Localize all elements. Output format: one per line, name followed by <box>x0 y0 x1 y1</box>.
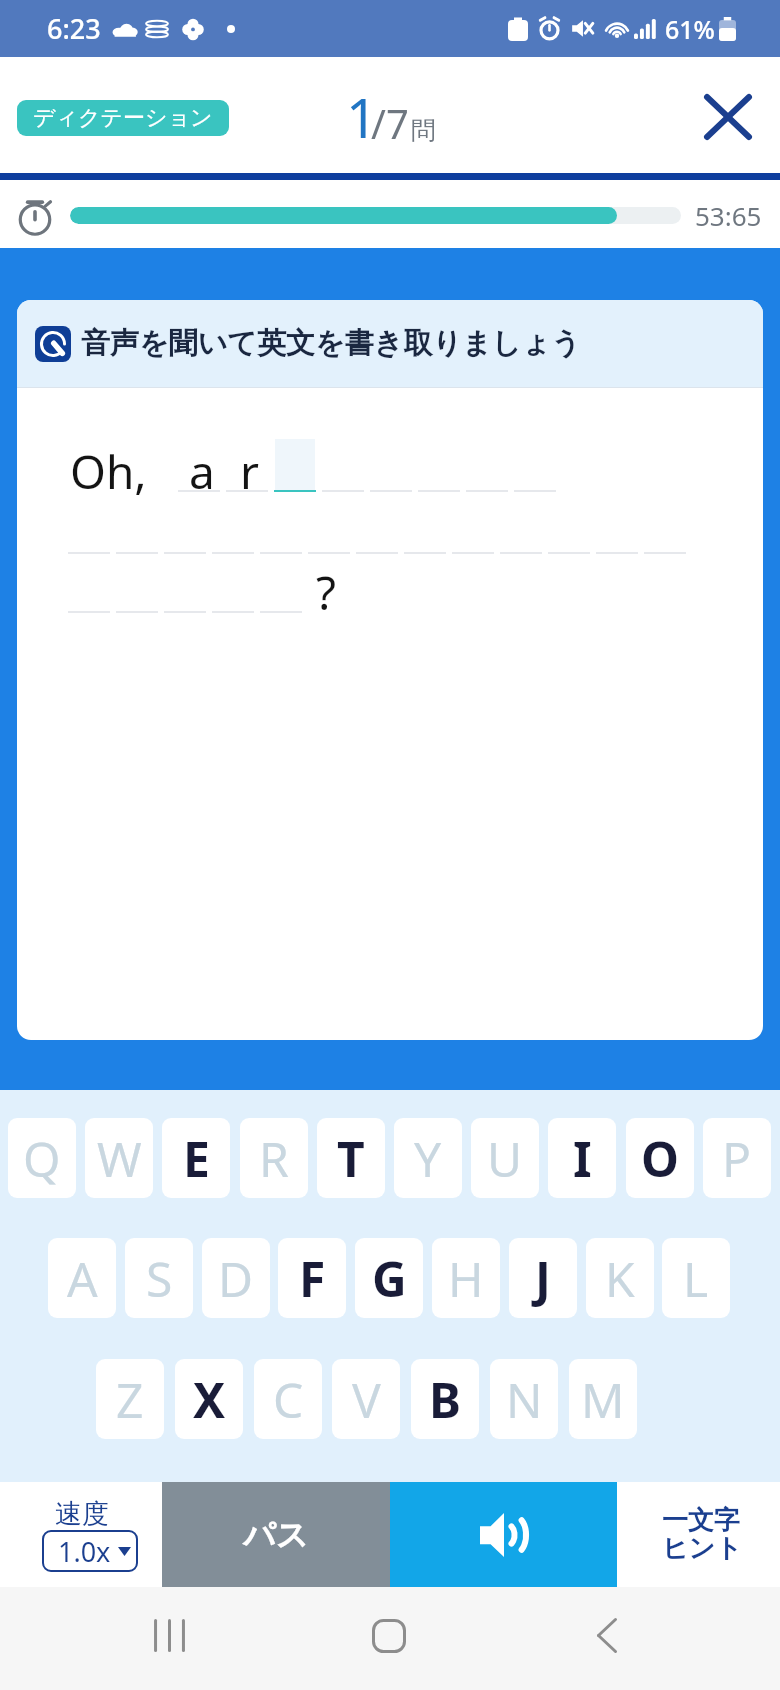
button[interactable]: S <box>125 1238 193 1318</box>
staticText: /7 <box>371 96 409 150</box>
staticText: Y <box>414 1126 442 1191</box>
staticText: W <box>97 1126 142 1191</box>
staticText: A <box>67 1246 98 1311</box>
button[interactable]: F <box>278 1238 346 1318</box>
staticText: 音声を聞いて英文を書き取りましょう <box>81 325 581 362</box>
button[interactable]: ディクテーション <box>17 100 229 136</box>
button[interactable]: Play audio <box>390 1482 617 1587</box>
staticText: Q <box>23 1126 61 1191</box>
button[interactable]: C <box>254 1359 322 1439</box>
button[interactable]: 速度 <box>0 1482 162 1587</box>
staticText: ヒント <box>662 1532 742 1565</box>
staticText: M <box>581 1367 625 1432</box>
staticText: H <box>448 1246 484 1311</box>
staticText: D <box>218 1246 254 1311</box>
staticText: 1 <box>346 79 378 154</box>
staticText: B <box>429 1367 461 1432</box>
staticText: J <box>535 1246 551 1311</box>
button[interactable]: A <box>48 1238 116 1318</box>
staticText: E <box>183 1126 210 1191</box>
button[interactable]: T <box>317 1118 385 1198</box>
staticText: F <box>299 1246 326 1311</box>
staticText: r <box>240 440 259 503</box>
button[interactable]: H <box>432 1238 500 1318</box>
staticText: I <box>573 1126 592 1191</box>
button[interactable]: W <box>85 1118 153 1198</box>
staticText: C <box>273 1367 304 1432</box>
button[interactable]: P <box>703 1118 771 1198</box>
staticText: X <box>193 1367 226 1432</box>
button[interactable]: Home <box>343 1590 434 1681</box>
staticText: N <box>506 1367 543 1432</box>
button[interactable]: L <box>662 1238 730 1318</box>
staticText: V <box>352 1367 381 1432</box>
staticText: 6:23 <box>47 10 101 47</box>
button[interactable]: Recent apps <box>124 1590 215 1681</box>
staticText: 問 <box>411 115 436 146</box>
staticText: K <box>605 1246 635 1311</box>
button[interactable]: O <box>626 1118 694 1198</box>
button[interactable]: M <box>569 1359 637 1439</box>
button[interactable]: パス <box>162 1482 390 1587</box>
button[interactable]: B <box>411 1359 479 1439</box>
staticText: O <box>641 1126 679 1191</box>
button[interactable]: V <box>332 1359 400 1439</box>
button[interactable]: I <box>548 1118 616 1198</box>
staticText: R <box>259 1126 289 1191</box>
staticText: 速度 <box>55 1497 109 1531</box>
staticText: U <box>487 1126 523 1191</box>
button[interactable]: U <box>471 1118 539 1198</box>
staticText: L <box>683 1246 709 1311</box>
staticText: S <box>146 1246 173 1311</box>
button[interactable]: N <box>490 1359 558 1439</box>
staticText: a <box>189 440 215 503</box>
button[interactable]: Q <box>8 1118 76 1198</box>
button[interactable]: Back <box>561 1590 652 1681</box>
button[interactable]: R <box>240 1118 308 1198</box>
button[interactable]: J <box>509 1238 577 1318</box>
button[interactable]: G <box>355 1238 423 1318</box>
staticText: Z <box>116 1367 144 1432</box>
staticText: Oh, <box>70 440 147 503</box>
staticText: ディクテーション <box>33 104 213 132</box>
staticText: パス <box>243 1515 309 1555</box>
button[interactable]: E <box>162 1118 230 1198</box>
staticText: 一文字 <box>662 1504 740 1537</box>
staticText: 53:65 <box>695 198 762 233</box>
staticText: 1.0x <box>58 1533 111 1570</box>
staticText: 61% <box>665 12 715 46</box>
button[interactable]: K <box>586 1238 654 1318</box>
button[interactable]: D <box>202 1238 270 1318</box>
staticText: G <box>372 1246 407 1311</box>
staticText: T <box>337 1126 365 1191</box>
button[interactable]: Z <box>96 1359 164 1439</box>
button[interactable]: 一文字 <box>617 1482 780 1587</box>
staticText: ? <box>316 561 336 624</box>
button[interactable]: Close <box>696 83 760 147</box>
staticText: P <box>722 1126 752 1191</box>
button[interactable]: Y <box>394 1118 462 1198</box>
button[interactable]: X <box>175 1359 243 1439</box>
